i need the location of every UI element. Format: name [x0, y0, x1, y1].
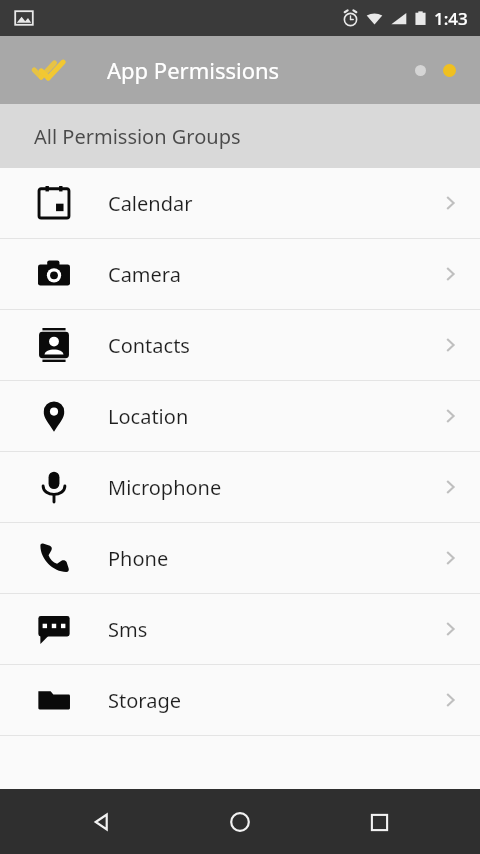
- staticText: Camera: [108, 261, 420, 288]
- staticText: Location: [108, 403, 420, 430]
- button[interactable]: Sms: [0, 594, 480, 664]
- button[interactable]: Recent apps: [356, 799, 402, 845]
- button[interactable]: Contacts: [0, 310, 480, 380]
- button[interactable]: Back: [78, 799, 124, 845]
- staticText: Contacts: [108, 332, 420, 359]
- staticText: Phone: [108, 545, 420, 572]
- button[interactable]: Calendar: [0, 168, 480, 238]
- staticText: Storage: [108, 687, 420, 714]
- staticText: All Permission Groups: [34, 123, 241, 150]
- other: App icon: [28, 48, 72, 92]
- staticText: Sms: [108, 616, 420, 643]
- button[interactable]: Camera: [0, 239, 480, 309]
- button[interactable]: Phone: [0, 523, 480, 593]
- staticText: Microphone: [108, 474, 420, 501]
- staticText: Calendar: [108, 190, 420, 217]
- button[interactable]: Microphone: [0, 452, 480, 522]
- staticText: App Permissions: [107, 55, 280, 85]
- button[interactable]: Location: [0, 381, 480, 451]
- button[interactable]: Home: [217, 799, 263, 845]
- staticText: 1:43: [434, 7, 468, 30]
- button[interactable]: Page indicator 2: [443, 64, 456, 77]
- button[interactable]: Storage: [0, 665, 480, 735]
- button[interactable]: Page indicator 1: [415, 65, 426, 76]
